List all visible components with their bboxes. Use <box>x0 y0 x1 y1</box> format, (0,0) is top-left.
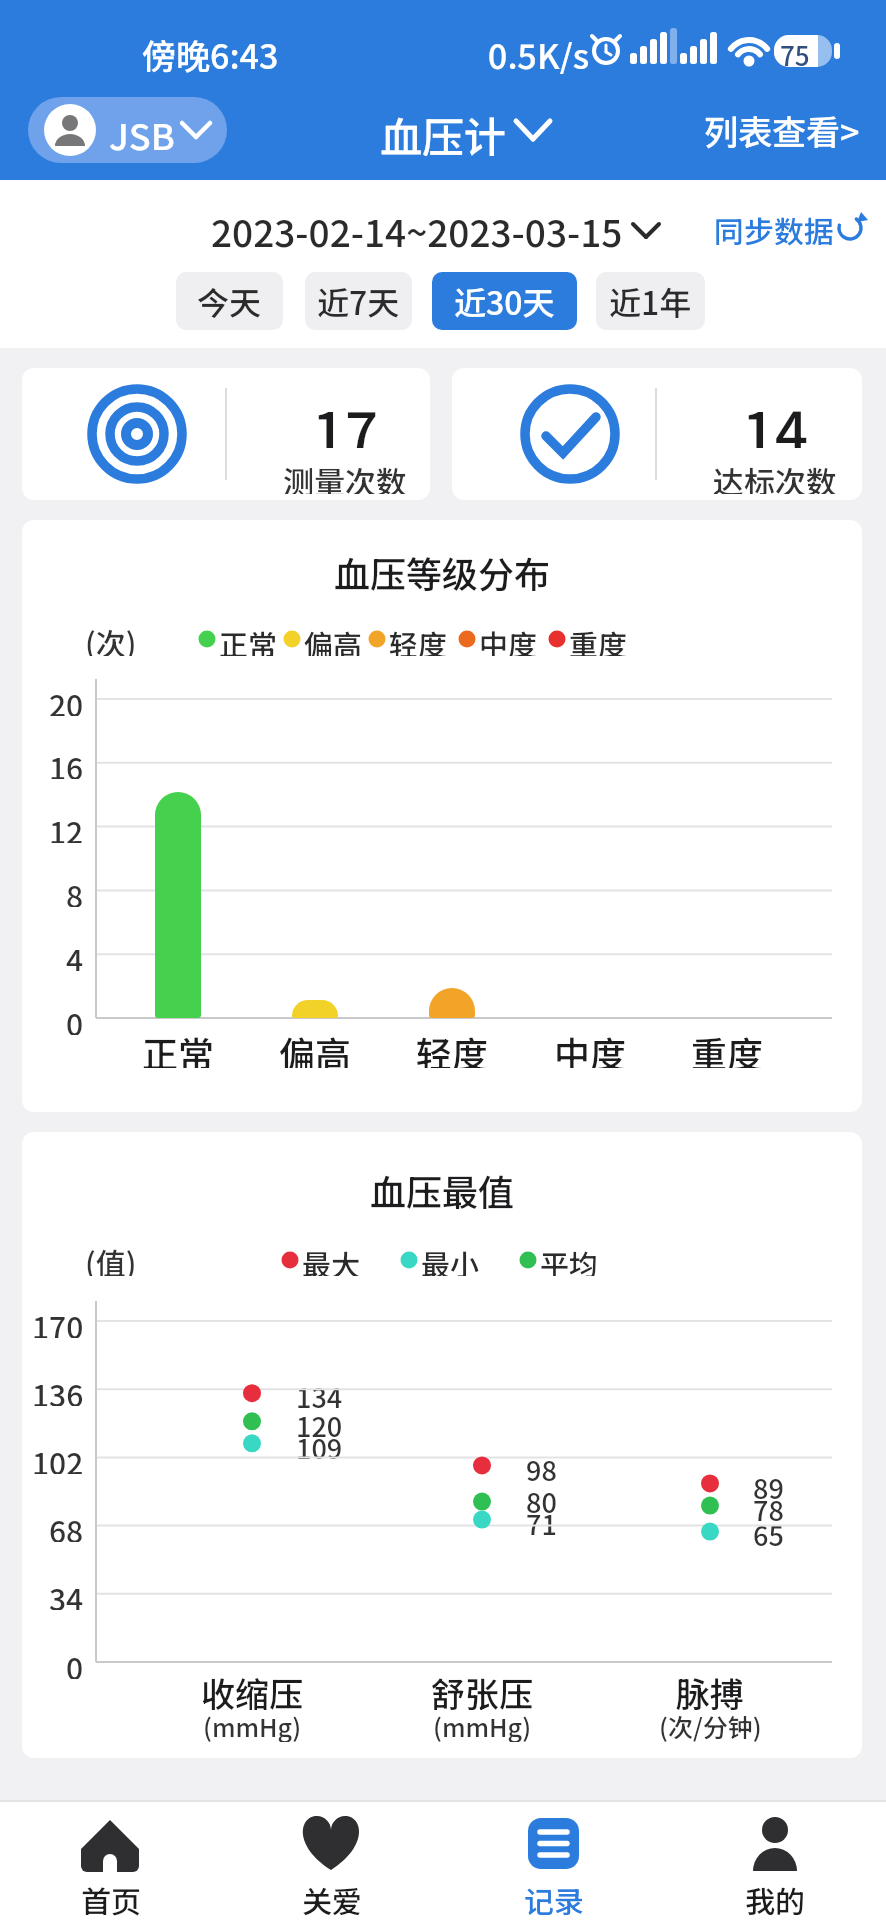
button[interactable] <box>664 1806 885 1920</box>
staticText: (次) <box>85 620 137 656</box>
staticText: 17 <box>312 388 379 448</box>
staticText: 0 <box>66 1645 84 1679</box>
button[interactable] <box>443 1806 664 1920</box>
staticText: 脉搏 <box>676 1668 744 1710</box>
staticText: 正常 <box>142 1026 215 1068</box>
staticText: 傍晚6:43 <box>142 30 279 74</box>
staticText: 14 <box>742 388 809 448</box>
staticText: 8 <box>66 873 84 907</box>
button[interactable] <box>452 368 862 500</box>
staticText: 109 <box>296 1428 343 1462</box>
staticText: 重度 <box>569 622 628 656</box>
staticText: 关爱 <box>302 1878 362 1918</box>
staticText: 血压等级分布 <box>334 546 551 594</box>
staticText: 近1年 <box>609 278 692 324</box>
button[interactable]: 近1年 <box>596 272 705 330</box>
staticText: 平均 <box>540 1242 599 1276</box>
staticText: 测量次数 <box>283 458 407 494</box>
staticText: 68 <box>49 1508 84 1542</box>
staticText: 达标次数 <box>713 458 837 494</box>
button[interactable] <box>221 1806 442 1920</box>
staticText: 20 <box>49 682 84 716</box>
button[interactable] <box>22 368 430 500</box>
staticText: 34 <box>49 1576 84 1610</box>
staticText: 最大 <box>302 1242 361 1276</box>
staticText: 偏高 <box>304 622 363 656</box>
staticText: JSB <box>109 108 175 152</box>
button[interactable]: 列表查看> <box>660 104 860 156</box>
staticText: (mmHg) <box>203 1708 302 1742</box>
staticText: 首页 <box>81 1878 141 1918</box>
staticText: (次/分钟) <box>659 1708 762 1742</box>
staticText: 列表查看> <box>704 106 860 155</box>
staticText: 中度 <box>479 622 538 656</box>
button[interactable] <box>0 1806 221 1920</box>
staticText: 0.5K/s <box>488 30 590 74</box>
staticText: 同步数据 <box>714 208 834 250</box>
staticText: 0 <box>66 1001 84 1035</box>
button[interactable]: 近30天 <box>432 272 577 330</box>
staticText: 我的 <box>745 1878 805 1918</box>
staticText: 今天 <box>197 278 262 324</box>
staticText: 偏高 <box>279 1026 352 1068</box>
staticText: 16 <box>49 745 84 779</box>
staticText: 134 <box>296 1377 343 1411</box>
staticText: 71 <box>526 1504 557 1538</box>
staticText: 98 <box>526 1450 557 1484</box>
staticText: 舒张压 <box>431 1668 533 1710</box>
staticText: 轻度 <box>389 622 448 656</box>
staticText: 正常 <box>219 622 278 656</box>
staticText: 重度 <box>691 1026 764 1068</box>
staticText: (值) <box>85 1240 137 1276</box>
staticText: (mmHg) <box>433 1708 532 1742</box>
staticText: 近30天 <box>454 278 555 324</box>
staticText: 12 <box>49 809 84 843</box>
staticText: 4 <box>66 937 84 971</box>
staticText: 血压计 <box>380 104 507 156</box>
staticText: 中度 <box>554 1026 627 1068</box>
staticText: 轻度 <box>416 1026 489 1068</box>
staticText: 血压最值 <box>370 1164 515 1212</box>
button[interactable] <box>710 208 870 252</box>
staticText: 最小 <box>421 1242 480 1276</box>
staticText: 75 <box>780 36 810 66</box>
staticText: 102 <box>32 1440 84 1474</box>
staticText: 收缩压 <box>201 1668 303 1710</box>
button[interactable]: 近7天 <box>305 272 412 330</box>
staticText: 78 <box>753 1490 784 1524</box>
staticText: 80 <box>526 1482 557 1516</box>
button[interactable] <box>200 204 670 254</box>
staticText: 136 <box>32 1372 84 1406</box>
staticText: 近7天 <box>317 278 400 324</box>
button[interactable] <box>28 97 227 163</box>
staticText: 记录 <box>524 1878 584 1918</box>
staticText: 170 <box>32 1304 84 1338</box>
staticText: 89 <box>753 1468 784 1502</box>
staticText: 120 <box>296 1406 343 1440</box>
staticText: 65 <box>753 1515 784 1549</box>
button[interactable]: 今天 <box>176 272 283 330</box>
staticText: 2023-02-14~2023-03-15 <box>211 204 623 254</box>
